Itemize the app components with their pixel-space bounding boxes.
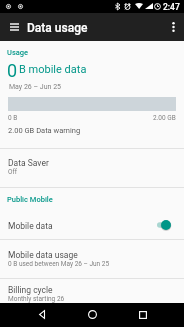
- staticText: Data Saver: [8, 158, 49, 168]
- button[interactable]: Home: [81, 303, 104, 326]
- staticText: Usage: [7, 48, 29, 57]
- staticText: B mobile data: [19, 63, 87, 76]
- staticText: Billing cycle: [8, 285, 53, 295]
- button[interactable]: Data Saver: [0, 149, 184, 187]
- button[interactable]: Mobile data: [0, 210, 184, 239]
- staticText: 2:47: [163, 2, 180, 12]
- button[interactable]: Billing cycle: [0, 279, 184, 317]
- staticText: Mobile data: [8, 221, 53, 231]
- button[interactable]: Open navigation drawer: [0, 13, 28, 41]
- staticText: 0: [7, 60, 18, 81]
- button[interactable]: More options: [159, 13, 184, 41]
- staticText: 2.00 GB: [153, 114, 176, 122]
- staticText: Monthly starting 26: [8, 295, 65, 303]
- staticText: 0 B: [8, 114, 18, 122]
- staticText: May 26 – Jun 25: [9, 83, 62, 91]
- button[interactable]: Back: [30, 303, 53, 326]
- staticText: 0 B used between May 26 – Jun 25: [8, 260, 110, 268]
- staticText: Public Mobile: [7, 195, 53, 204]
- button[interactable]: Recent apps: [131, 303, 154, 326]
- staticText: Off: [8, 168, 17, 176]
- button[interactable]: Mobile data usage: [0, 240, 184, 278]
- staticText: Data usage: [27, 21, 88, 35]
- staticText: Mobile data usage: [8, 250, 78, 260]
- staticText: 2.00 GB Data warning: [8, 126, 81, 135]
